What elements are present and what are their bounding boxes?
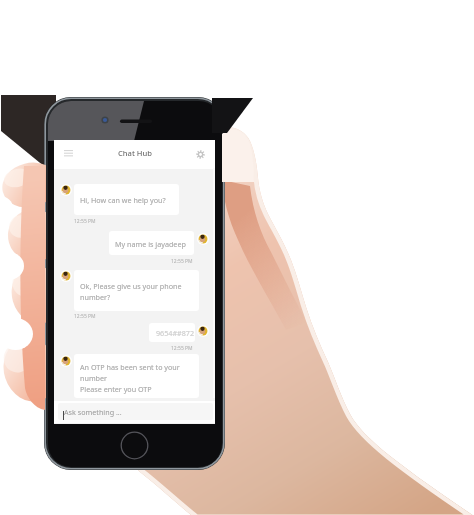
- button[interactable]: Settings: [190, 143, 211, 166]
- staticText: 12:55 PM: [74, 313, 96, 320]
- staticText: Hi, How can we help you?: [80, 195, 166, 205]
- button[interactable]: Menu: [56, 141, 80, 164]
- button[interactable]: Ask something ...: [58, 403, 213, 420]
- staticText: 12:55 PM: [171, 258, 193, 265]
- button[interactable]: My name is jayadeep: [109, 231, 194, 255]
- staticText: 12:55 PM: [74, 218, 96, 225]
- staticText: Ask something ...: [64, 407, 122, 417]
- button[interactable]: Hi, How can we help you?: [74, 184, 179, 215]
- staticText: 12:55 PM: [171, 345, 193, 352]
- button[interactable]: 9654##872: [149, 323, 195, 342]
- staticText: My name is jayadeep: [115, 239, 186, 249]
- button[interactable]: An OTP has been sent to your number Plea…: [74, 354, 199, 398]
- staticText: Ok, Please give us your phone number?: [80, 281, 199, 302]
- staticText: An OTP has been sent to your number Plea…: [80, 362, 199, 394]
- staticText: Chat Hub: [118, 148, 152, 158]
- button[interactable]: Ok, Please give us your phone number?: [74, 270, 199, 311]
- staticText: 9654##872: [156, 328, 195, 338]
